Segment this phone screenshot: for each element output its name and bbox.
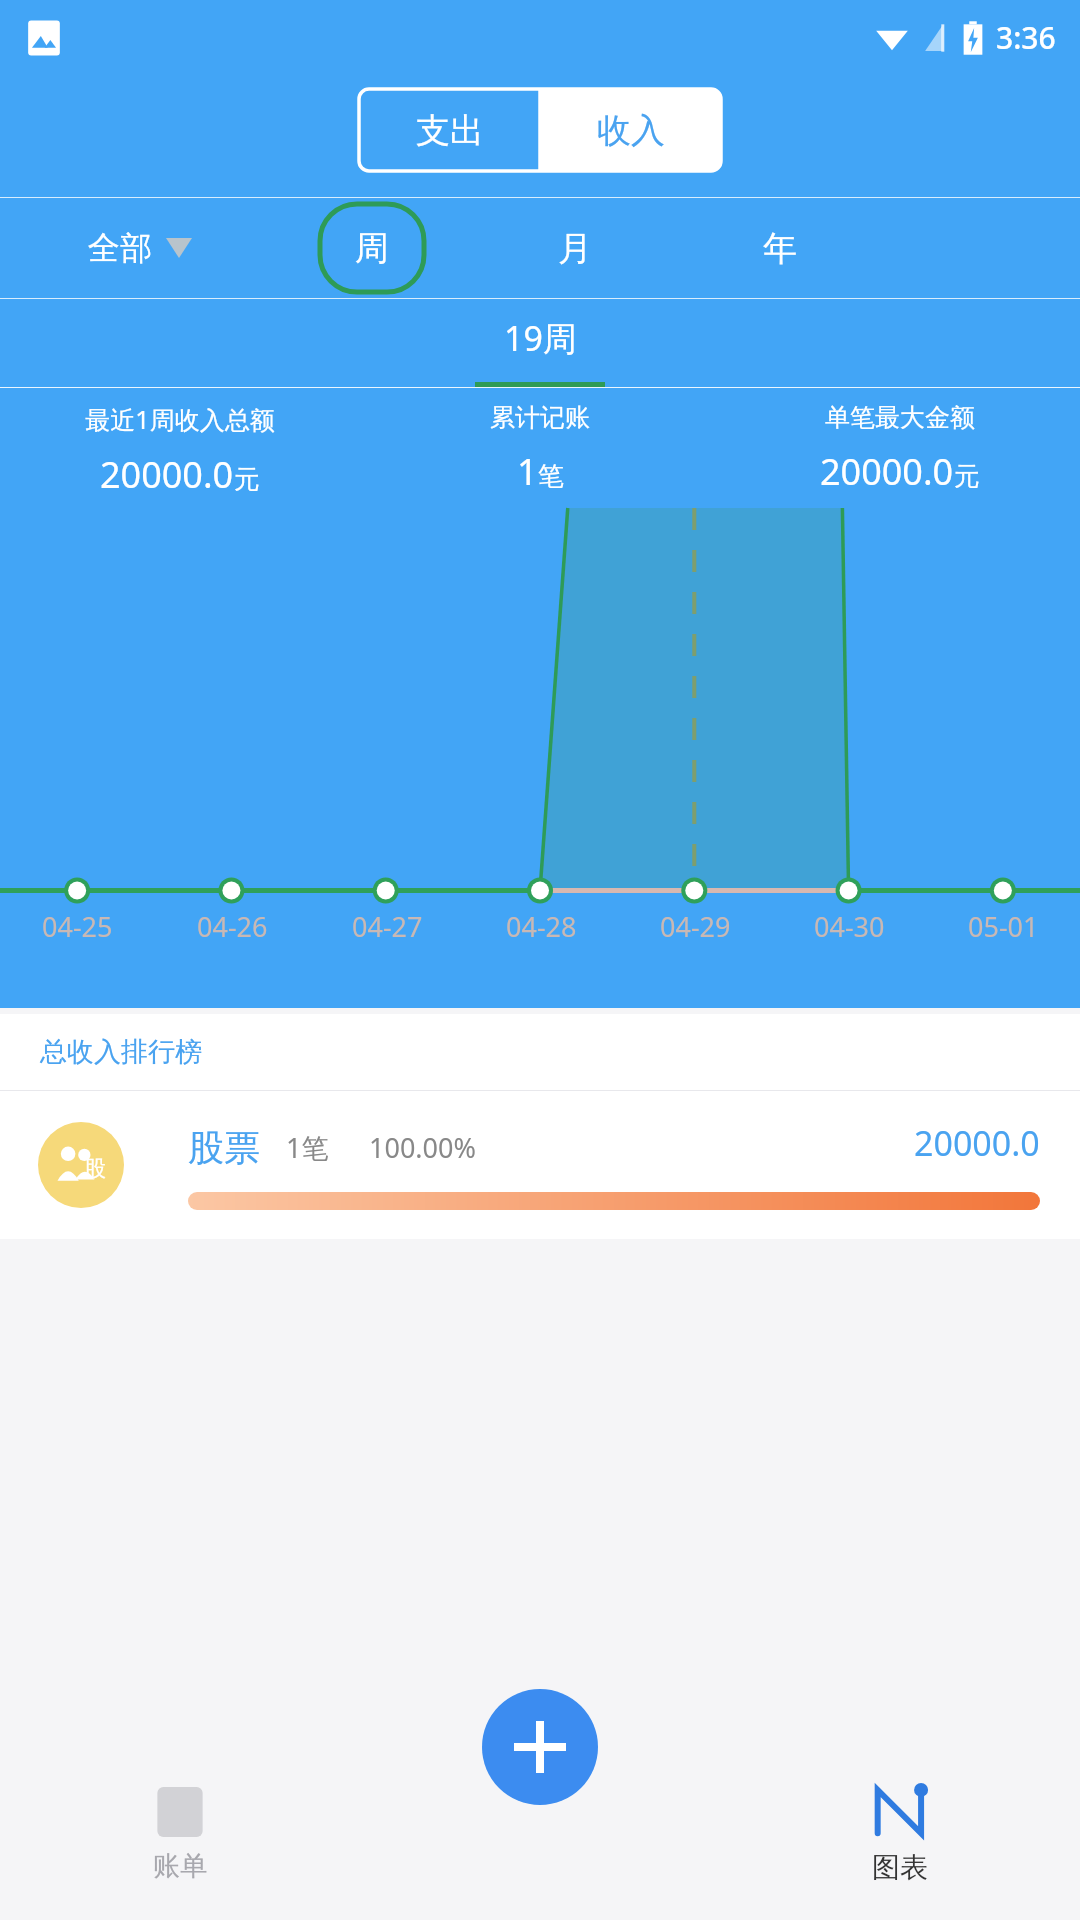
staticText: 3:36 [996, 17, 1056, 58]
staticText: 单笔最大金额 [825, 402, 975, 433]
button[interactable]: 收入 [540, 89, 721, 171]
staticText: 04-26 [197, 908, 268, 945]
staticText: 元 [954, 460, 980, 493]
staticText: 图表 [872, 1850, 928, 1885]
staticText: 收入 [597, 109, 665, 152]
staticText: 股票 [188, 1125, 260, 1170]
button[interactable]: 支出 [359, 89, 540, 171]
staticText: 累计记账 [490, 402, 590, 433]
staticText: 1笔 [286, 1129, 329, 1166]
button[interactable]: 19周 [475, 299, 605, 387]
staticText: 股 [84, 1155, 106, 1183]
staticText: 月 [558, 227, 592, 270]
staticText: 04-28 [506, 908, 577, 945]
staticText: 最近1周收入总额 [85, 402, 275, 436]
staticText: 20000.0 [820, 447, 954, 496]
staticText: 04-29 [660, 908, 731, 945]
staticText: 支出 [416, 109, 484, 152]
button[interactable]: 年 [735, 204, 825, 292]
staticText: 账单 [153, 1849, 207, 1883]
button[interactable]: 图表 [720, 1745, 1080, 1920]
button[interactable]: 周 [320, 204, 424, 292]
staticText: 05-01 [968, 908, 1039, 945]
staticText: 周 [355, 227, 389, 270]
staticText: 全部 [88, 228, 152, 268]
button[interactable]: 月 [530, 204, 620, 292]
button[interactable]: 股 [0, 1091, 1080, 1239]
staticText: 1 [517, 447, 538, 496]
staticText: 笔 [538, 460, 564, 493]
button[interactable]: 全部 [88, 228, 192, 268]
staticText: 20000.0 [914, 1120, 1040, 1166]
staticText: 年 [763, 227, 797, 270]
staticText: 04-27 [352, 908, 423, 945]
staticText: 04-30 [814, 908, 885, 945]
staticText: 元 [234, 463, 260, 496]
staticText: 04-25 [42, 908, 113, 945]
staticText: 20000.0 [100, 450, 234, 499]
staticText: 100.00% [369, 1129, 476, 1166]
staticText: 19周 [504, 315, 577, 361]
staticText: 总收入排行榜 [40, 1035, 202, 1069]
button[interactable]: Add [482, 1689, 598, 1805]
button[interactable]: 账单 [0, 1745, 360, 1920]
